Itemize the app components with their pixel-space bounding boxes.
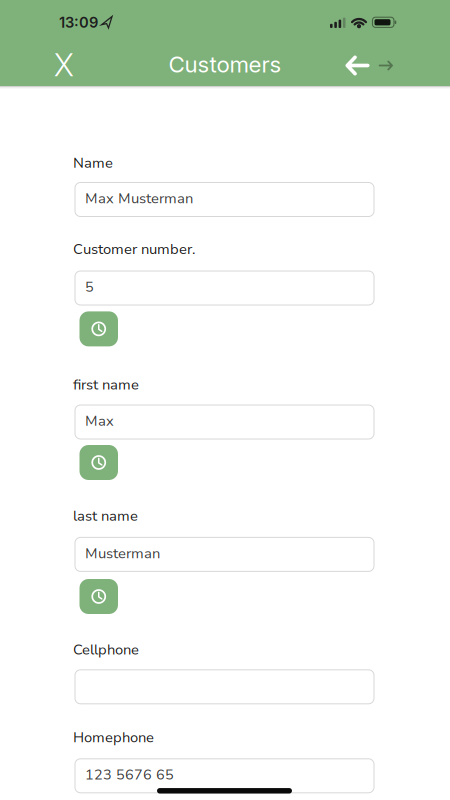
staticText: last name [73,506,138,526]
staticText: 123 5676 65 [85,765,174,785]
staticText: Cellphone [73,640,139,659]
button[interactable]: 5 [75,271,374,305]
button[interactable]: Max [75,405,374,439]
staticText: Customers [168,51,281,78]
staticText: Homephone [73,728,154,747]
button[interactable]: Back [347,56,368,74]
staticText: 5 [85,277,94,297]
staticText: Customer number. [73,239,195,259]
button[interactable]: Set time [79,445,118,480]
staticText: 13:09 [59,13,98,31]
staticText: Max [85,411,114,431]
staticText: Name [73,153,113,173]
staticText: X [54,46,74,83]
button[interactable]: Set time [79,311,118,346]
staticText: Musterman [85,544,160,563]
button[interactable]: Musterman [75,537,374,571]
button[interactable]: 123 5676 65 [75,759,374,793]
button[interactable]: Close [42,43,86,87]
staticText: Max Musterman [85,189,193,208]
staticText: first name [73,375,139,395]
button[interactable]: Set time [79,579,118,614]
button[interactable]: Text field [75,670,374,704]
button[interactable]: Forward [380,60,392,70]
button[interactable]: Max Musterman [75,182,374,216]
